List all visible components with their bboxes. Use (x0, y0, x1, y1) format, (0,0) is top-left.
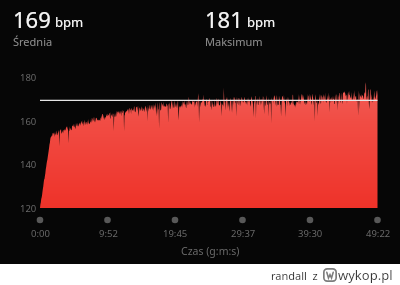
staticText: bpm (55, 13, 84, 31)
staticText: 9:52 (99, 227, 118, 240)
staticText: randall z (271, 268, 318, 283)
button[interactable]: 169 (13, 4, 84, 49)
staticText: bpm (247, 13, 276, 31)
staticText: wykop.pl (338, 266, 393, 284)
other: wykop.pl (323, 268, 337, 282)
button[interactable] (0, 0, 400, 264)
staticText: Czas (g:m:s) (181, 244, 240, 258)
button[interactable]: 181 (205, 4, 276, 49)
staticText: Średnia (13, 34, 53, 49)
staticText: 169 (13, 4, 51, 34)
staticText: 19:45 (163, 227, 188, 240)
button[interactable]: randall z (271, 266, 393, 284)
staticText: 120 (20, 202, 37, 215)
staticText: 181 (205, 4, 243, 34)
staticText: 140 (20, 158, 37, 171)
staticText: 29:37 (231, 227, 256, 240)
staticText: 160 (20, 115, 37, 128)
staticText: Maksimum (205, 34, 263, 49)
staticText: 180 (20, 71, 37, 84)
staticText: 0:00 (31, 227, 50, 240)
staticText: 39:30 (298, 227, 323, 240)
staticText: 49:22 (366, 227, 391, 240)
